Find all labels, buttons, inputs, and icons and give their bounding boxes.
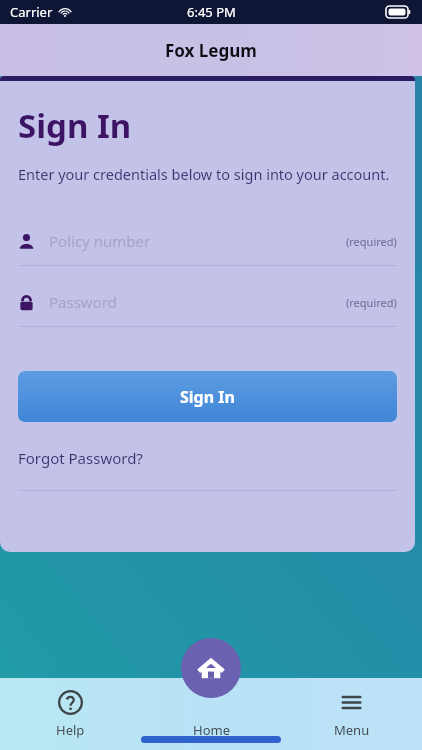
button[interactable]: Password [18,287,397,327]
staticText: Fox Legum [165,39,257,62]
staticText: (required) [346,295,397,310]
staticText: Policy number [49,231,346,251]
staticText: Menu [334,721,370,739]
other: Menu [339,690,364,715]
staticText: 6:45 PM [187,3,236,21]
button[interactable]: Forgot Password? [18,448,143,468]
staticText: (required) [346,234,397,249]
staticText: Carrier [10,3,53,21]
staticText: Password [49,292,346,312]
staticText: Home [193,721,230,739]
staticText: Enter your credentials below to sign int… [18,164,390,184]
button[interactable]: Home [181,638,241,698]
staticText: Forgot Password? [18,448,143,468]
other: Help [58,690,83,715]
staticText: Help [56,721,85,739]
staticText: Sign In [18,103,132,148]
button[interactable]: Menu [281,690,422,739]
staticText: Sign In [180,386,235,408]
button[interactable]: Policy number [18,226,397,266]
button[interactable]: Help [0,690,140,739]
button[interactable]: Sign In [18,371,397,422]
